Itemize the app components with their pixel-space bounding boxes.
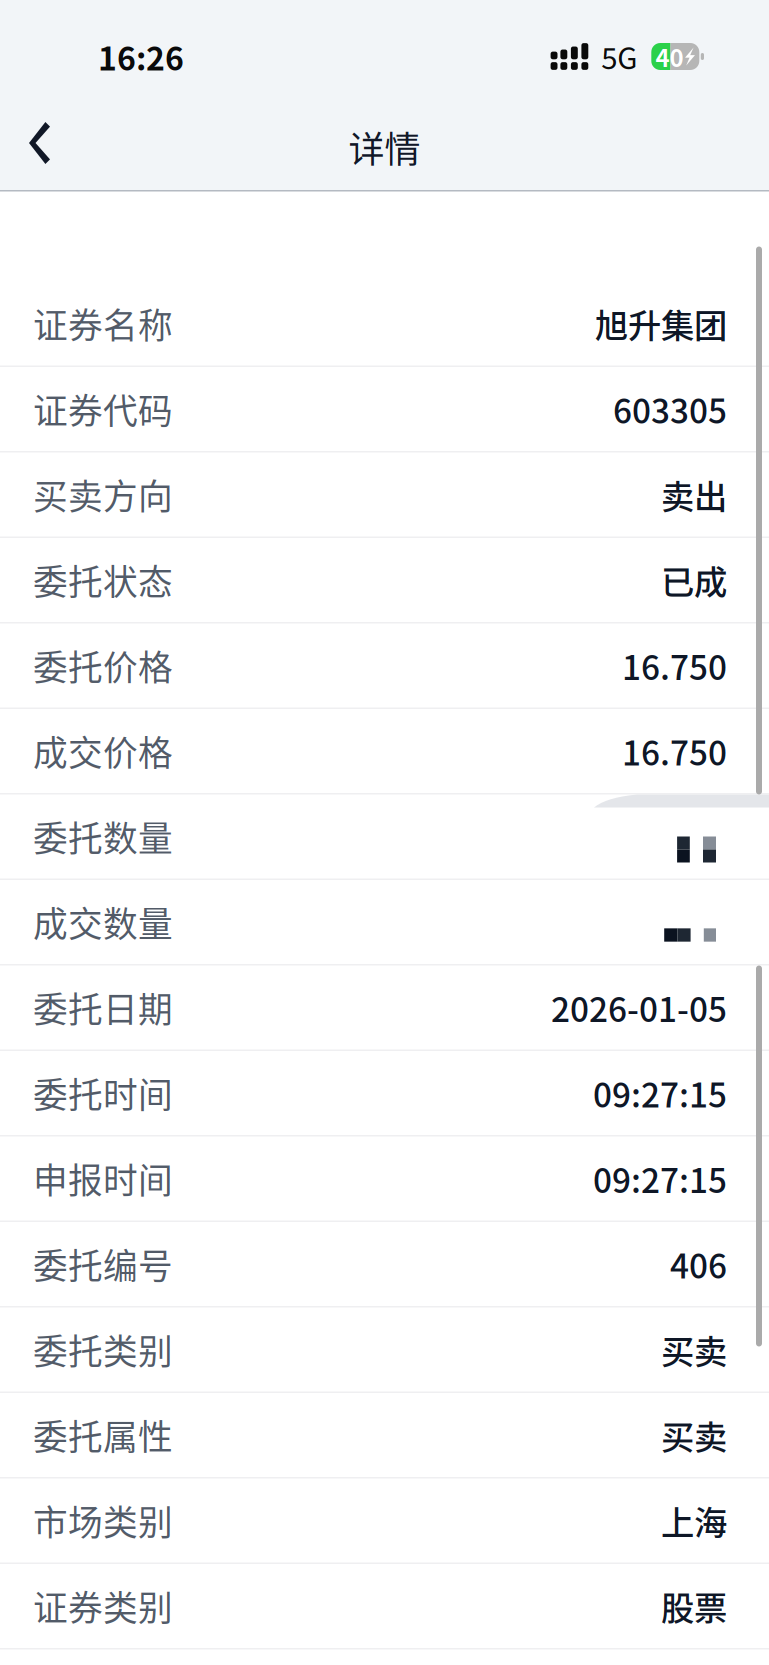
staticText: 16.750 (622, 641, 727, 690)
staticText: 603305 (613, 385, 727, 433)
staticText: 证券代码 (33, 384, 173, 434)
staticText: 详情 (348, 121, 420, 173)
staticText: 委托状态 (33, 555, 173, 605)
staticText: 09:27:15 (593, 1069, 727, 1117)
staticText: 申报时间 (33, 1153, 173, 1204)
staticText: 委托数量 (33, 811, 173, 862)
staticText: 卖出 (661, 470, 727, 519)
staticText: 上海 (661, 1496, 727, 1545)
staticText: 16:26 (98, 33, 184, 80)
staticText: 5G (601, 35, 637, 78)
staticText: 2026-01-05 (551, 983, 727, 1032)
staticText: 买卖 (661, 1325, 727, 1374)
staticText: 已成 (661, 556, 727, 604)
staticText: 证券类别 (33, 1581, 173, 1631)
staticText: 委托价格 (33, 640, 173, 691)
staticText: 09:27:15 (593, 1154, 727, 1203)
staticText: 16.750 (622, 727, 727, 775)
staticText: 市场类别 (33, 1495, 173, 1546)
staticText: 委托编号 (33, 1239, 173, 1289)
staticText: 成交价格 (33, 726, 173, 776)
staticText: 406 (670, 1240, 727, 1288)
button[interactable]: 返回 (0, 101, 76, 193)
staticText: 旭升集团 (595, 299, 727, 348)
staticText: 证券名称 (33, 298, 173, 349)
staticText: 委托时间 (33, 1068, 173, 1118)
staticText: 成交数量 (33, 897, 173, 947)
staticText: 40 (656, 39, 684, 74)
staticText: 委托日期 (33, 982, 173, 1033)
staticText: 买卖方向 (33, 469, 173, 520)
staticText: 委托属性 (33, 1410, 173, 1460)
staticText: 股票 (661, 1582, 727, 1630)
staticText: 委托类别 (33, 1324, 173, 1375)
staticText: 买卖 (661, 1411, 727, 1459)
